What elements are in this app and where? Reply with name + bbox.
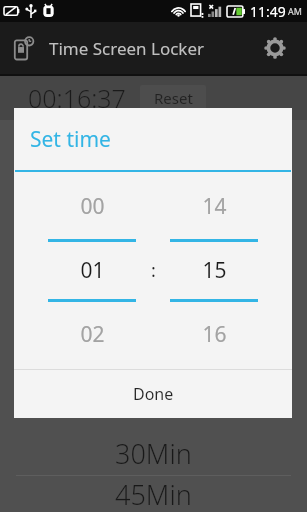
staticText: 11:49 — [250, 2, 286, 21]
button[interactable]: 14 — [170, 192, 258, 349]
button[interactable]: Settings — [255, 28, 295, 68]
staticText: 00:16:37 — [28, 81, 126, 115]
button[interactable]: 45Min — [0, 476, 307, 512]
staticText: 01 — [80, 256, 105, 285]
staticText: 00 — [80, 192, 105, 221]
button[interactable]: Reset — [140, 85, 206, 111]
button[interactable]: 00 — [48, 192, 136, 349]
staticText: 15 — [202, 256, 227, 285]
staticText: 16 — [202, 320, 227, 349]
staticText: : — [151, 258, 156, 283]
staticText: 14 — [202, 192, 227, 221]
staticText: Done — [133, 383, 174, 405]
button[interactable]: 30Min — [0, 431, 307, 475]
staticText: Set time — [30, 125, 111, 154]
staticText: 45Min — [115, 476, 192, 512]
staticText: 30Min — [115, 435, 192, 472]
staticText: Reset — [154, 88, 193, 108]
staticText: AM — [288, 5, 302, 17]
staticText: 02 — [80, 320, 105, 349]
button[interactable]: Done — [14, 370, 292, 418]
staticText: Time Screen Locker — [49, 37, 205, 60]
